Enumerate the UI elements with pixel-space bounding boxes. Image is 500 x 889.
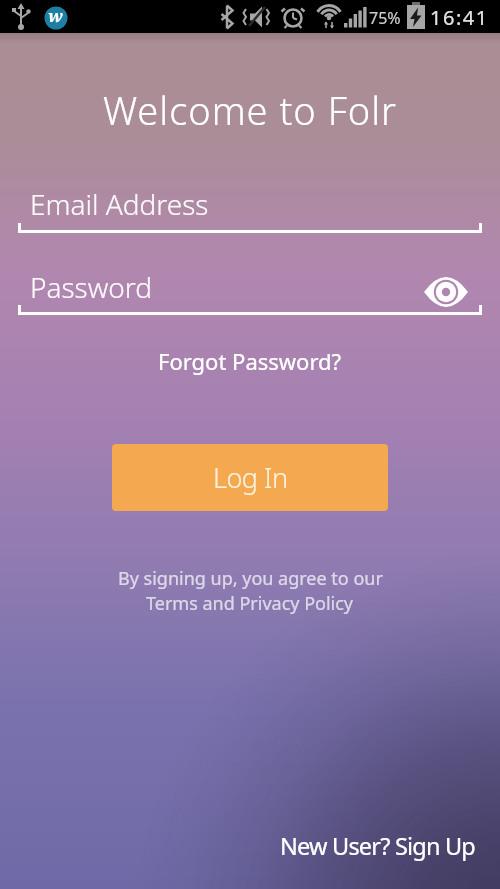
button[interactable]: New User? Sign Up	[272, 822, 484, 870]
staticText: w	[48, 4, 63, 27]
button[interactable]: Log In	[112, 444, 388, 511]
staticText: Email Address	[30, 185, 209, 223]
button[interactable]: Forgot Password?	[148, 340, 352, 382]
staticText: By signing up, you agree to our	[118, 566, 383, 591]
staticText: Welcome to Folr	[0, 84, 500, 136]
staticText: Terms and Privacy Policy	[146, 591, 354, 616]
button[interactable]: Email Address	[16, 182, 484, 234]
button[interactable]: By signing up, you agree to our	[0, 566, 500, 616]
staticText: 75%	[369, 7, 401, 29]
staticText: Forgot Password?	[158, 346, 342, 376]
staticText: Log In	[213, 459, 288, 496]
staticText: 16:41	[430, 4, 489, 31]
staticText: Password	[30, 268, 153, 306]
staticText: New User? Sign Up	[280, 830, 476, 862]
button[interactable]: Password	[16, 266, 484, 316]
